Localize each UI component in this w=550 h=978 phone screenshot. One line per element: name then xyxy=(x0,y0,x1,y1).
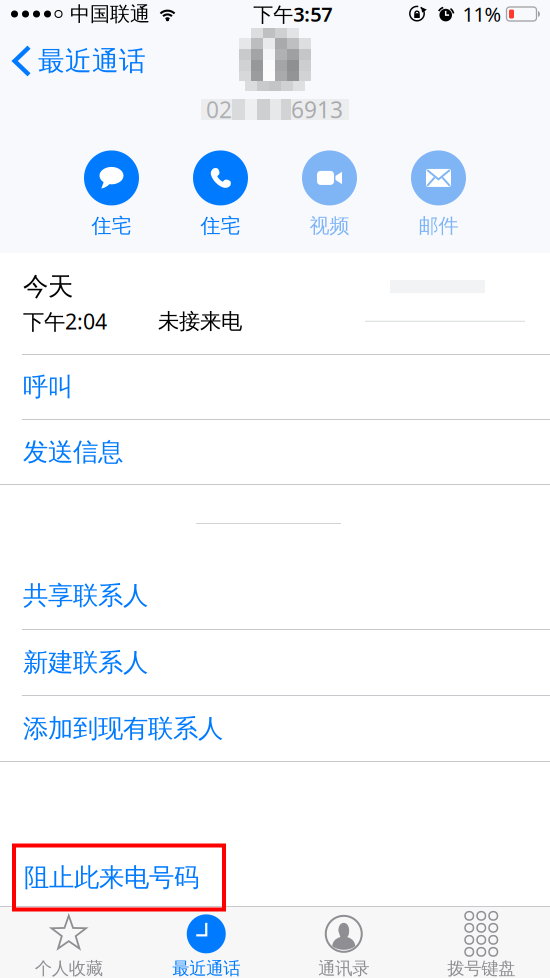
staticText: 发送信息 xyxy=(23,436,123,467)
button[interactable]: 住宅 xyxy=(170,150,270,238)
button[interactable]: 呼叫 xyxy=(0,355,550,419)
staticText: 下午3:57 xyxy=(253,1,332,27)
button[interactable]: 共享联系人 xyxy=(0,562,550,629)
staticText: 个人收藏 xyxy=(35,958,103,978)
staticText: 住宅 xyxy=(200,213,240,238)
staticText: 未接来电 xyxy=(158,308,242,334)
button[interactable]: 发送信息 xyxy=(0,420,550,484)
button[interactable]: 住宅 xyxy=(61,150,161,238)
button[interactable]: 添加到现有联系人 xyxy=(0,696,550,761)
button[interactable]: 通讯录 xyxy=(275,906,412,978)
button[interactable]: 邮件 xyxy=(388,150,488,238)
staticText: 中国联通 xyxy=(70,2,150,26)
staticText: 通讯录 xyxy=(318,958,369,978)
staticText: 阻止此来电号码 xyxy=(24,862,199,893)
staticText: 最近通话 xyxy=(172,958,240,978)
button[interactable]: 阻止此来电号码 xyxy=(14,845,224,909)
staticText: 邮件 xyxy=(418,213,458,238)
staticText: 今天 xyxy=(23,271,73,302)
staticText: 最近通话 xyxy=(38,45,146,77)
button[interactable]: 视频 xyxy=(279,150,379,238)
button[interactable]: 最近通话 xyxy=(0,28,146,84)
button[interactable]: 最近通话 xyxy=(137,906,275,978)
staticText: 添加到现有联系人 xyxy=(23,713,223,744)
staticText: 视频 xyxy=(309,213,349,238)
staticText: 新建联系人 xyxy=(23,647,148,678)
staticText: 拨号键盘 xyxy=(447,958,515,978)
button[interactable]: 个人收藏 xyxy=(0,906,137,978)
staticText: 02 xyxy=(206,94,232,124)
button[interactable]: 新建联系人 xyxy=(0,630,550,695)
staticText: 呼叫 xyxy=(23,371,73,402)
staticText: 11% xyxy=(462,1,501,27)
staticText: 下午2:04 xyxy=(23,307,107,335)
staticText: 住宅 xyxy=(91,213,131,238)
staticText: 6913 xyxy=(291,94,343,124)
button[interactable]: 拨号键盘 xyxy=(412,906,550,978)
staticText: 共享联系人 xyxy=(23,580,148,611)
